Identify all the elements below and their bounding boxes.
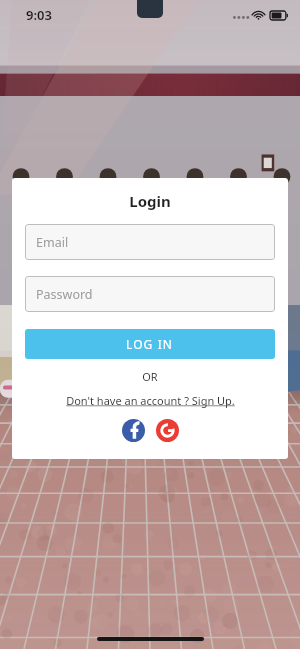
button[interactable]: Email [25,224,275,260]
staticText: LOG IN [126,336,174,352]
staticText: OR [25,369,275,384]
staticText: Password [36,286,93,303]
button[interactable]: Sign in with Facebook [122,419,145,442]
staticText: 9:03 [26,6,52,24]
staticText: Login [25,191,275,211]
button[interactable]: Password [25,276,275,312]
button[interactable]: Sign in with Google [156,419,179,442]
button[interactable]: LOG IN [25,329,275,359]
button[interactable]: Don't have an account ? Sign Up. [66,393,235,408]
staticText: Email [36,234,69,251]
